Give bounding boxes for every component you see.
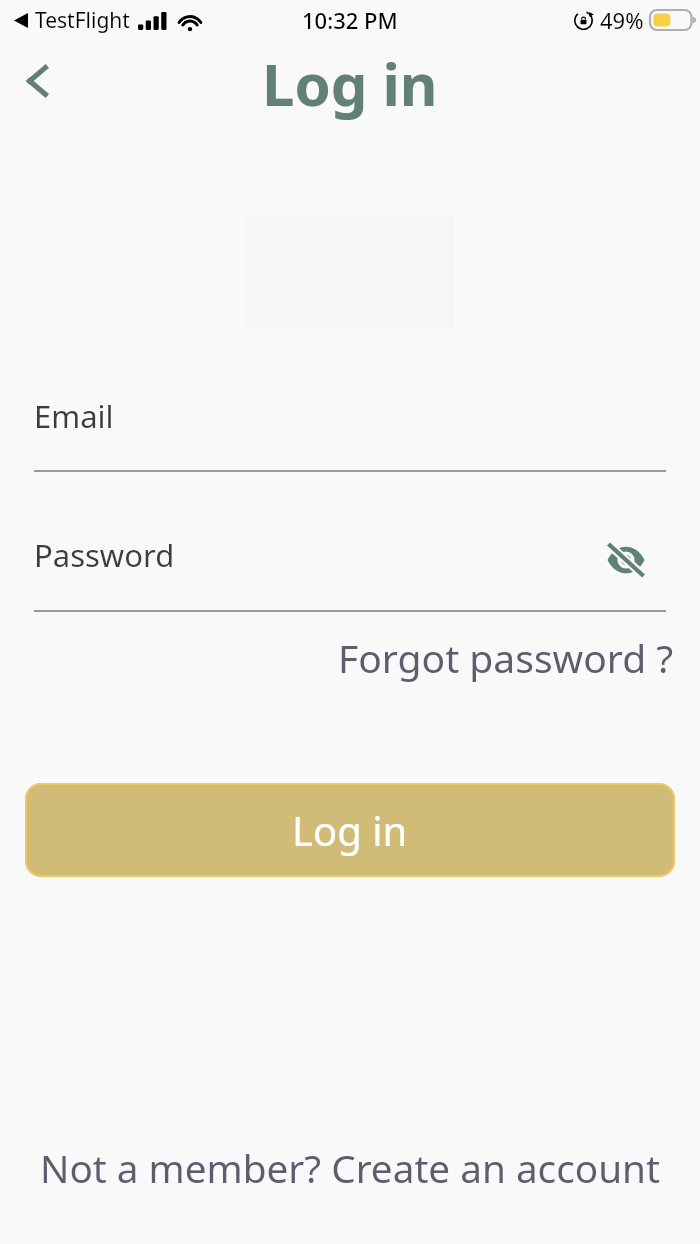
staticText: 10:32 PM [302,5,398,35]
button[interactable]: Show password [600,534,651,585]
staticText: Log in [262,44,438,123]
staticText: Email [34,395,114,437]
button[interactable]: Not a member? Create an account [34,1136,666,1201]
staticText: TestFlight [35,6,130,35]
button[interactable]: Back [9,53,65,109]
staticText: Password [34,534,175,576]
button[interactable]: Forgot password ? [334,625,678,690]
staticText: Log in [292,803,408,857]
staticText: 49% [600,5,644,35]
button[interactable]: Log in [25,783,675,877]
